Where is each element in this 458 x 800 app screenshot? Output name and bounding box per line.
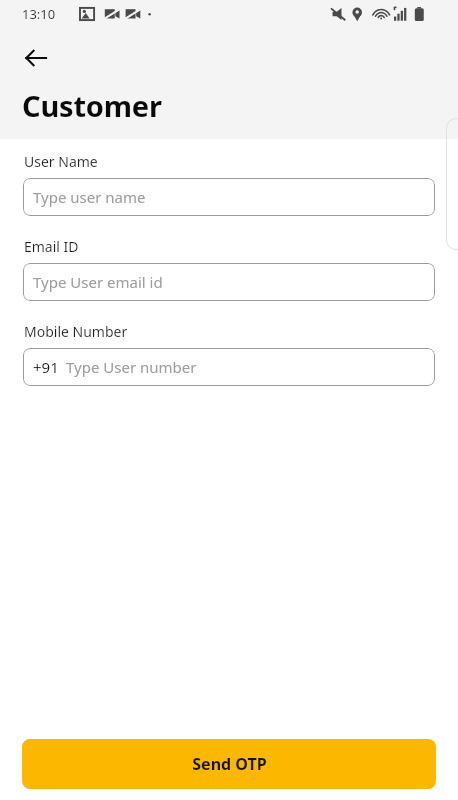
staticText: Send OTP [192,753,267,775]
staticText: Type User email id [33,272,163,292]
staticText: Email ID [24,237,79,256]
staticText: Customer [22,86,162,125]
button[interactable]: Type user name [23,178,435,216]
button[interactable]: Send OTP [22,739,436,789]
staticText: Type user name [33,187,146,207]
staticText: Mobile Number [24,322,128,341]
staticText: +91 [33,357,59,377]
staticText: 13:10 [22,5,56,23]
button[interactable]: Back [16,38,56,78]
button[interactable]: +91 [23,348,435,386]
staticText: User Name [24,152,98,171]
button[interactable]: Type User email id [23,263,435,301]
staticText: Type User number [66,357,197,377]
